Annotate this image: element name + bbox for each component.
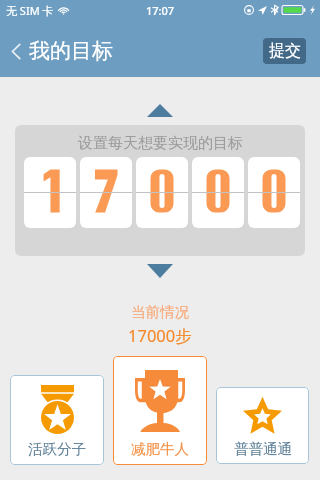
button[interactable] — [24, 157, 76, 228]
button[interactable]: 提交 — [263, 38, 306, 64]
button[interactable] — [192, 157, 244, 228]
staticText: 17000步 — [128, 324, 192, 347]
button[interactable]: 活跃分子 — [10, 375, 104, 465]
staticText: 17:07 — [146, 3, 175, 18]
staticText: 设置每天想要实现的目标 — [78, 134, 243, 153]
staticText: 活跃分子 — [28, 440, 86, 458]
staticText: 普普通通 — [234, 440, 292, 458]
button[interactable]: 减肥牛人 — [113, 356, 207, 465]
button[interactable] — [80, 157, 132, 228]
staticText: 我的目标 — [29, 38, 113, 64]
button[interactable] — [136, 157, 188, 228]
button[interactable]: 普普通通 — [216, 387, 309, 464]
button[interactable]: 我的目标 — [0, 32, 123, 70]
button[interactable]: Decrease goal — [147, 264, 173, 278]
staticText: 无 SIM 卡 — [6, 3, 54, 18]
staticText: 当前情况 — [131, 303, 189, 321]
button[interactable] — [248, 157, 300, 228]
staticText: 减肥牛人 — [131, 440, 189, 458]
button[interactable]: Increase goal — [147, 104, 173, 117]
staticText: 提交 — [269, 41, 301, 61]
